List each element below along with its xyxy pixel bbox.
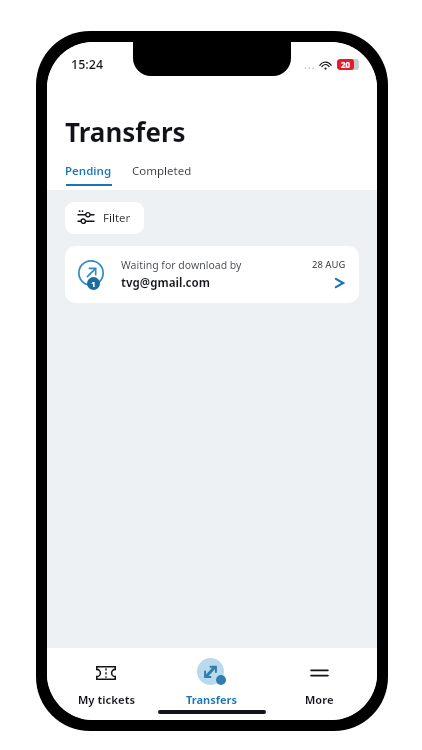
staticText: Transfers <box>186 692 238 707</box>
staticText: 15:24 <box>71 56 104 73</box>
button[interactable]: 1 <box>65 246 359 303</box>
staticText: My tickets <box>78 692 135 707</box>
staticText: 20 <box>341 59 351 70</box>
staticText: Transfers <box>65 114 186 149</box>
staticText: More <box>305 692 334 707</box>
button[interactable]: Completed <box>132 163 192 186</box>
button[interactable]: Transfers <box>164 654 260 711</box>
button[interactable]: My tickets <box>58 654 154 711</box>
button[interactable]: Pending <box>65 163 112 186</box>
other: More <box>311 667 328 679</box>
other: Transfers <box>197 658 227 688</box>
staticText: 1 <box>91 279 96 289</box>
staticText: Filter <box>103 210 131 226</box>
staticText: tvg@gmail.com <box>121 275 210 291</box>
staticText: 28 AUG <box>312 258 346 271</box>
other: My tickets <box>96 666 116 680</box>
button[interactable]: More <box>271 654 367 711</box>
staticText: Completed <box>132 163 192 179</box>
staticText: Waiting for download by <box>121 258 242 272</box>
staticText: Pending <box>65 163 112 179</box>
button[interactable]: Filter <box>65 202 144 234</box>
